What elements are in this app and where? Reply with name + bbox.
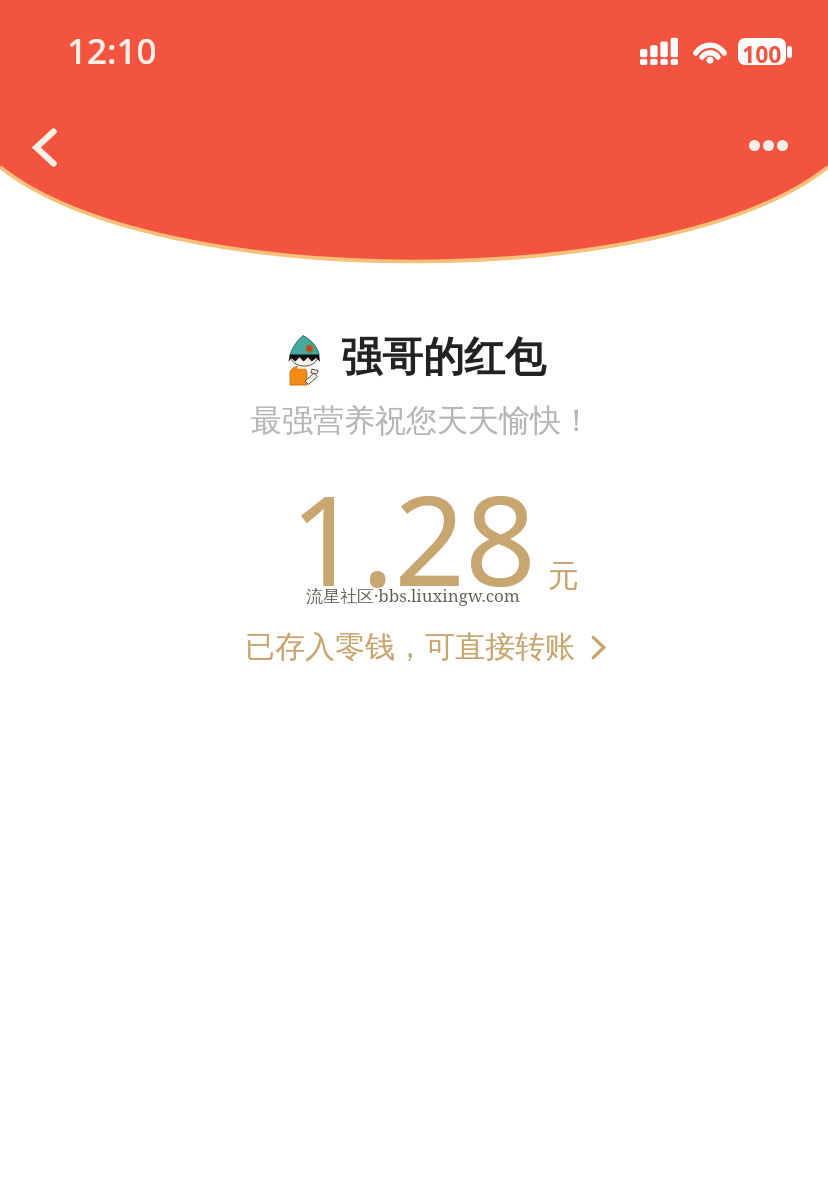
staticText: 1.28 <box>290 453 537 622</box>
staticText: 最强营养祝您天天愉快！ <box>251 401 592 440</box>
staticText: 12:10 <box>67 27 157 75</box>
staticText: 已存入零钱，可直接转账 <box>245 628 575 666</box>
button[interactable]: 已存入零钱，可直接转账 <box>245 628 606 666</box>
button[interactable]: More options <box>738 110 798 180</box>
staticText: 100 <box>742 38 782 65</box>
staticText: 元 <box>548 556 579 595</box>
staticText: 流星社区·bbs.liuxingw.com <box>306 584 520 607</box>
staticText: 强哥的红包 <box>341 332 546 384</box>
button[interactable]: Back <box>8 110 82 184</box>
